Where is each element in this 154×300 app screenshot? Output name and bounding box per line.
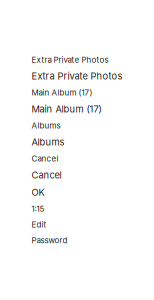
staticText: Password [31,235,67,245]
staticText: Edit [31,220,46,229]
staticText: Extra Private Photos [31,55,108,65]
staticText: OK [31,187,44,198]
staticText: Main Album (17) [31,88,92,98]
staticText: Albums [31,136,64,148]
staticText: Extra Private Photos [31,71,122,82]
staticText: Albums [31,121,60,130]
staticText: 1:15 [31,204,44,214]
staticText: Main Album (17) [31,103,101,115]
staticText: Cancel [31,169,61,181]
staticText: Cancel [31,154,58,163]
